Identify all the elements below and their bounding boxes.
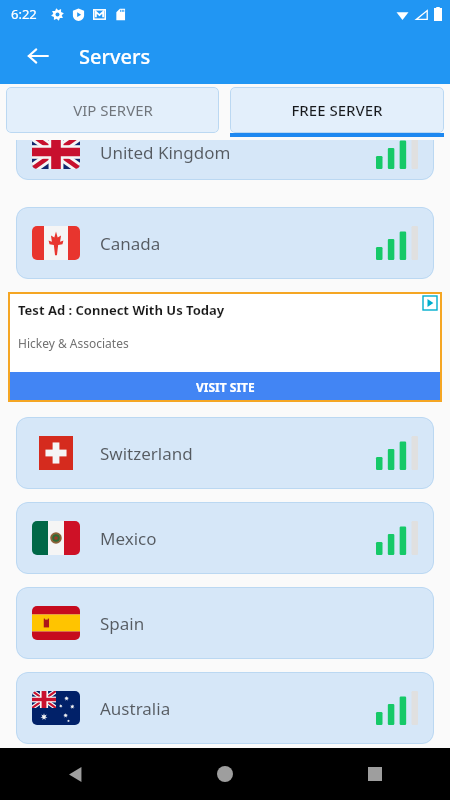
button[interactable]: Back [0,748,150,800]
staticText: Hickey & Associates [18,335,129,351]
staticText: FREE SERVER [291,100,383,120]
button[interactable]: Spain [16,587,434,659]
staticText: VIP SERVER [73,100,153,120]
staticText: 6:22 [11,5,37,23]
staticText: Canada [100,232,161,255]
button[interactable]: FREE SERVER [230,87,444,137]
other: Ad choices [423,296,437,310]
button[interactable]: Back [18,36,58,76]
button[interactable]: Mexico [16,502,434,574]
button[interactable]: Home [150,748,300,800]
staticText: Australia [100,697,171,720]
button[interactable]: Recent apps [300,748,450,800]
button[interactable]: Australia [16,672,434,744]
button[interactable]: VIP SERVER [6,87,219,137]
staticText: Mexico [100,527,157,550]
staticText: Servers [79,43,151,70]
button[interactable]: Switzerland [16,417,434,489]
button[interactable]: Canada [16,207,434,279]
button[interactable]: Test Ad : Connect With Us Today [8,292,442,402]
staticText: Test Ad : Connect With Us Today [18,301,225,319]
staticText: Switzerland [100,442,193,465]
staticText: Spain [100,612,145,635]
button[interactable]: United Kingdom [16,140,434,180]
staticText: United Kingdom [100,141,231,164]
staticText: VISIT SITE [196,379,255,395]
button[interactable]: VISIT SITE [8,372,442,402]
